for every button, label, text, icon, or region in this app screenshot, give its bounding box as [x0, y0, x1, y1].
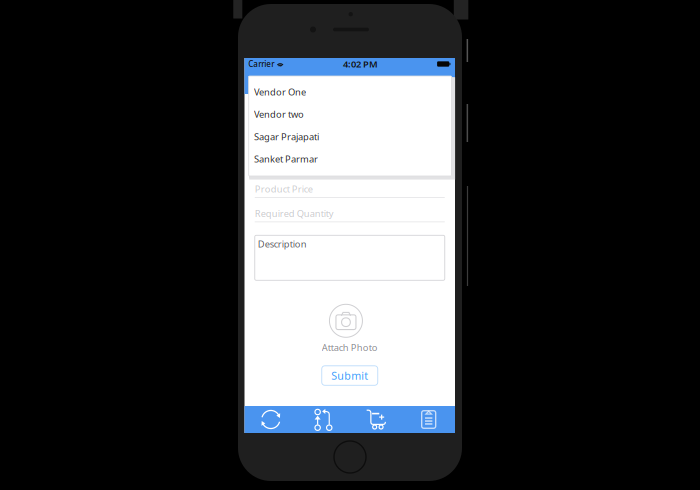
button[interactable]: Vendor two [249, 103, 451, 125]
staticText: Sagar Prajapati [254, 130, 319, 143]
staticText: Vendor two [254, 108, 304, 120]
button[interactable]: Vendor One [249, 81, 451, 103]
staticText: Sanket Parmar [254, 153, 318, 165]
staticText: Required Quantity [255, 207, 334, 220]
staticText: 4:02 PM [343, 58, 378, 70]
button[interactable]: Sanket Parmar [249, 148, 451, 170]
button[interactable]: Submit [322, 366, 378, 385]
staticText: Submit [331, 368, 368, 383]
button[interactable]: Transfers [297, 406, 350, 433]
button[interactable]: Add to cart [350, 406, 402, 433]
staticText: Carrier [248, 59, 274, 69]
button[interactable]: Orders [402, 406, 455, 433]
button[interactable]: Refresh [244, 406, 297, 433]
button[interactable]: Sagar Prajapati [249, 125, 451, 148]
staticText: Product Price [255, 183, 313, 195]
staticText: Attach Photo [322, 341, 378, 353]
staticText: Vendor One [254, 86, 306, 98]
button[interactable]: Attach Photo [290, 304, 410, 352]
staticText: Description [258, 238, 307, 250]
